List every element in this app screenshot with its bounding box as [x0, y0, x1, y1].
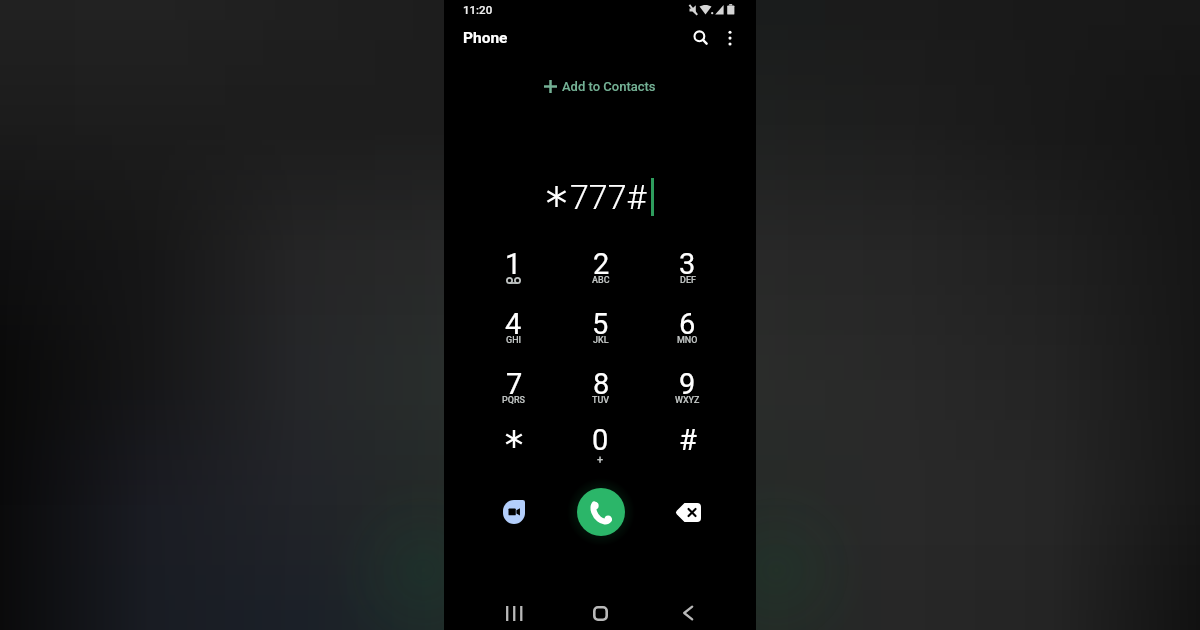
staticText: Add to Contacts: [562, 79, 656, 94]
button[interactable]: 7: [470, 367, 557, 423]
button[interactable]: Home: [557, 592, 644, 630]
staticText: PQRS: [502, 395, 526, 406]
staticText: TUV: [592, 395, 610, 406]
staticText: 3: [679, 247, 696, 281]
staticText: #: [679, 423, 697, 457]
staticText: 6: [679, 307, 696, 341]
staticText: 2: [593, 247, 610, 281]
staticText: DEF: [680, 275, 696, 286]
staticText: 7: [506, 367, 523, 401]
staticText: MNO: [677, 335, 698, 346]
button[interactable]: Add to Contacts: [444, 72, 756, 100]
button[interactable]: More options: [715, 19, 745, 56]
staticText: 1: [505, 247, 522, 281]
staticText: +: [597, 453, 604, 466]
button[interactable]: Call: [577, 488, 625, 536]
button[interactable]: 0: [557, 423, 644, 483]
button[interactable]: 4: [470, 307, 557, 367]
staticText: 0: [592, 423, 609, 457]
button[interactable]: Backspace: [644, 477, 731, 547]
button[interactable]: Video call: [470, 477, 557, 547]
button[interactable]: Search: [685, 19, 715, 56]
button[interactable]: 8: [557, 367, 644, 423]
staticText: 8: [593, 367, 610, 401]
button[interactable]: 5: [557, 307, 644, 367]
button[interactable]: 6: [644, 307, 731, 367]
staticText: 777#: [570, 177, 647, 217]
staticText: 5: [592, 307, 609, 341]
button[interactable]: Back: [644, 592, 731, 630]
button[interactable]: 2: [557, 247, 644, 307]
button[interactable]: Recents: [470, 592, 557, 630]
staticText: 4: [505, 307, 522, 341]
button[interactable]: 9: [644, 367, 731, 423]
staticText: JKL: [593, 335, 609, 346]
staticText: 11:20: [463, 3, 493, 16]
button[interactable]: 3: [644, 247, 731, 307]
staticText: GHI: [506, 335, 522, 346]
staticText: Phone: [463, 29, 508, 47]
staticText: WXYZ: [675, 395, 700, 406]
button[interactable]: 1: [470, 247, 557, 307]
staticText: ABC: [592, 275, 610, 286]
button[interactable]: [470, 423, 557, 483]
staticText: 9: [679, 367, 696, 401]
button[interactable]: #: [644, 423, 731, 483]
